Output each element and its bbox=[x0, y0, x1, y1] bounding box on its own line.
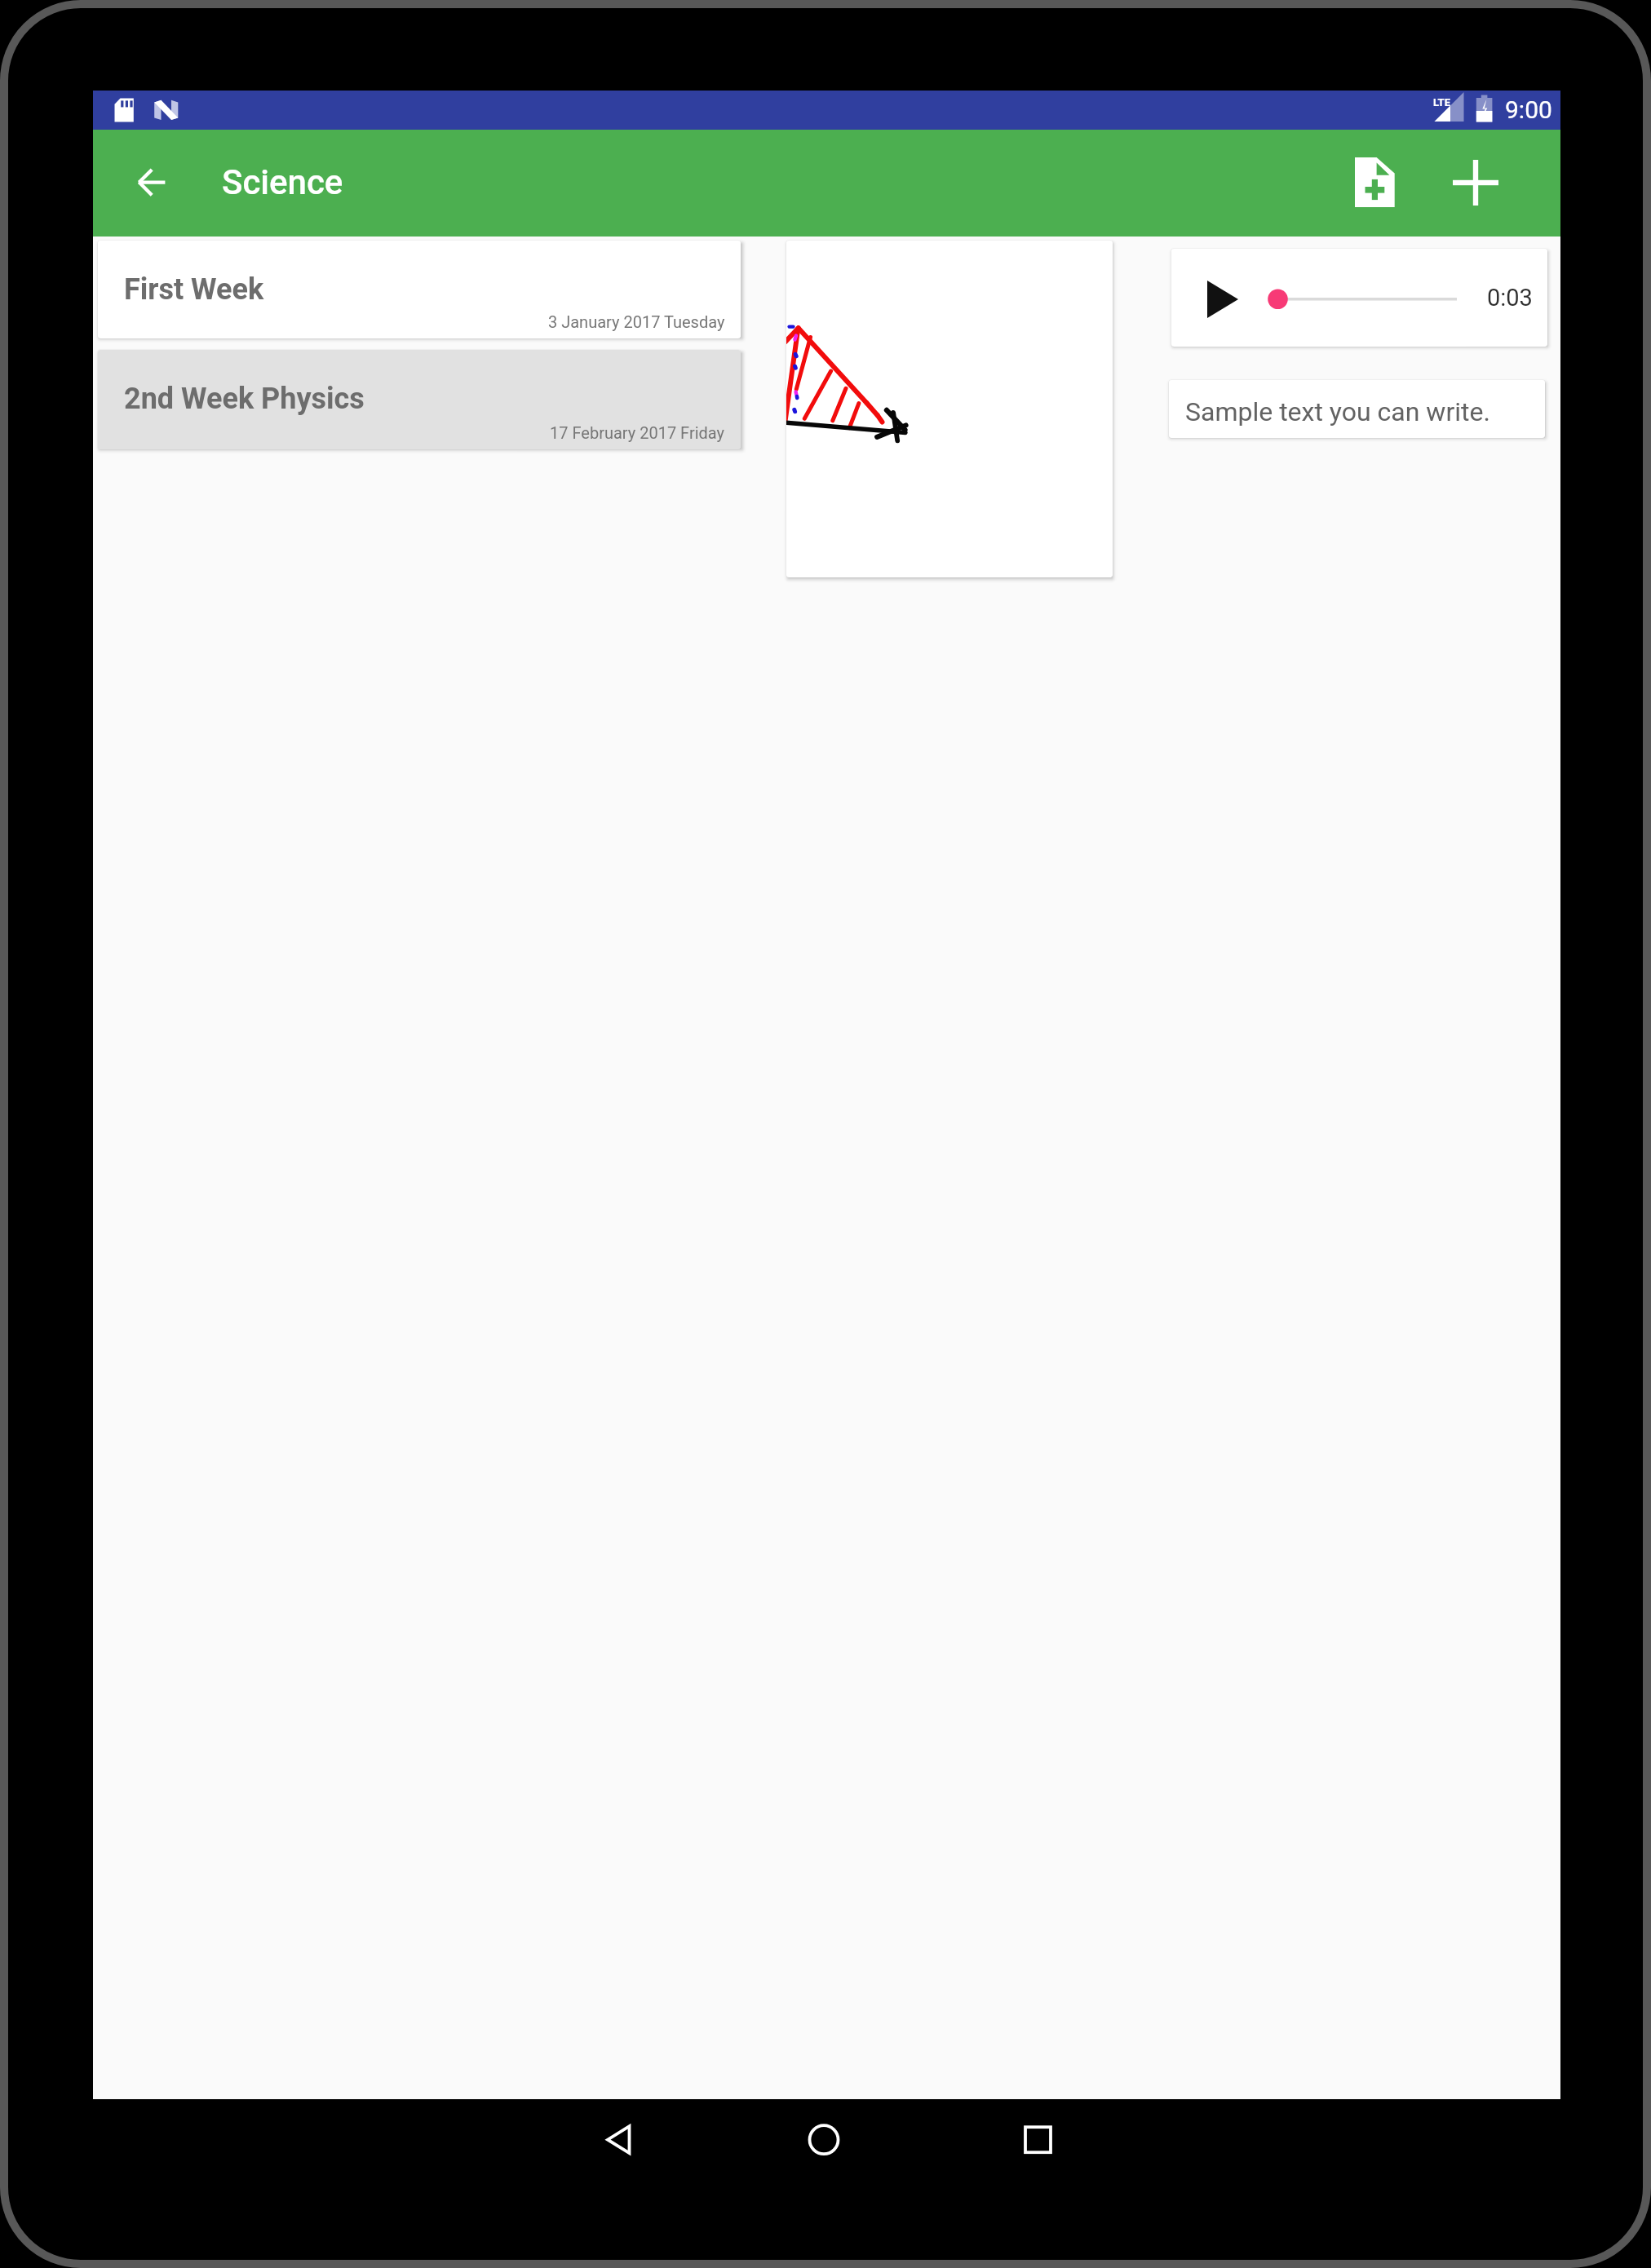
staticText: 17 February 2017 Friday bbox=[550, 423, 725, 442]
button[interactable]: 2nd Week Physics bbox=[98, 350, 741, 449]
button[interactable]: Drawing note bbox=[786, 241, 1113, 577]
staticText: 0:03 bbox=[1487, 284, 1533, 312]
button[interactable]: Sample text you can write. bbox=[1169, 380, 1545, 438]
button[interactable]: New note bbox=[1335, 143, 1414, 222]
button[interactable]: Play bbox=[1201, 281, 1245, 325]
staticText: 2nd Week Physics bbox=[124, 382, 365, 416]
staticText: 9:00 bbox=[1505, 95, 1552, 124]
staticText: Science bbox=[222, 162, 343, 202]
button[interactable]: Navigate up bbox=[113, 144, 191, 222]
staticText: LTE bbox=[1433, 96, 1450, 108]
staticText: 3 January 2017 Tuesday bbox=[548, 312, 725, 331]
button[interactable]: Play bbox=[1171, 249, 1547, 347]
staticText: First Week bbox=[124, 272, 264, 307]
staticText: Sample text you can write. bbox=[1185, 396, 1490, 427]
button[interactable]: First Week bbox=[98, 241, 741, 338]
button[interactable]: Add bbox=[1436, 144, 1515, 222]
